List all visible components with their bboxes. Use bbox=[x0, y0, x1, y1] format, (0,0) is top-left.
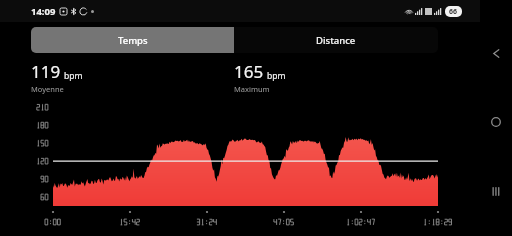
staticText: 14:09 bbox=[31, 5, 56, 18]
button[interactable]: Back bbox=[483, 40, 509, 66]
staticText: Distance bbox=[316, 34, 356, 47]
staticText: 119 bbox=[31, 60, 61, 83]
staticText: 165 bbox=[234, 60, 264, 83]
button[interactable]: Temps bbox=[31, 27, 234, 53]
button[interactable]: Home bbox=[483, 109, 509, 135]
button[interactable]: Recent apps bbox=[483, 178, 509, 204]
staticText: Maximum bbox=[234, 84, 270, 94]
staticText: 66 bbox=[449, 7, 458, 17]
staticText: Moyenne bbox=[31, 84, 64, 94]
staticText: Temps bbox=[118, 34, 148, 47]
staticText: bpm bbox=[64, 70, 83, 82]
staticText: bpm bbox=[267, 70, 286, 82]
button[interactable]: Distance bbox=[234, 27, 438, 53]
